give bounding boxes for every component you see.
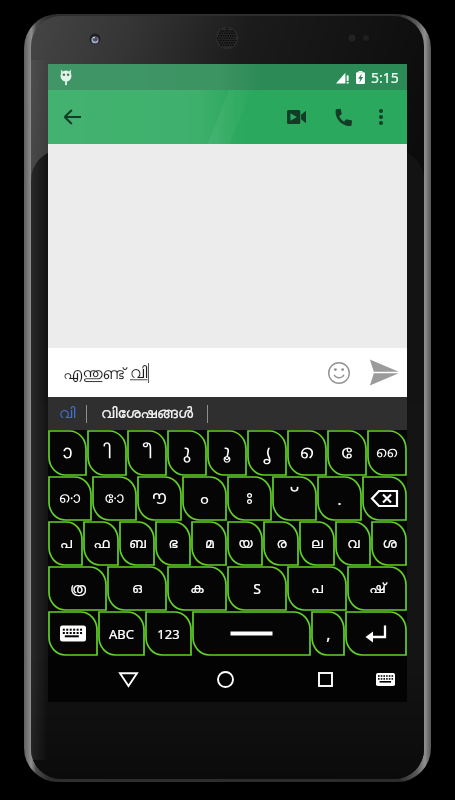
staticText: ഫ bbox=[93, 537, 110, 551]
staticText: ഷ് bbox=[369, 582, 386, 596]
button[interactable]: Backspace bbox=[362, 476, 407, 521]
staticText: വി bbox=[130, 365, 148, 381]
button[interactable]: Send bbox=[361, 348, 407, 397]
button[interactable]: Video call bbox=[276, 90, 316, 144]
button[interactable]: Enter bbox=[345, 611, 407, 656]
button[interactable]: ക bbox=[167, 566, 227, 611]
button[interactable]: യ bbox=[227, 521, 263, 566]
button[interactable]: ee bbox=[327, 430, 367, 476]
button[interactable]: oo bbox=[92, 476, 137, 521]
button[interactable]: aa bbox=[48, 430, 87, 476]
button[interactable]: ABC bbox=[98, 611, 145, 656]
staticText: 5:15 bbox=[371, 68, 399, 87]
staticText: യ bbox=[238, 537, 253, 551]
button[interactable]: 123 bbox=[145, 611, 192, 656]
button[interactable]: ah bbox=[227, 476, 272, 521]
staticText: ശ bbox=[382, 537, 397, 551]
button[interactable]: വ bbox=[335, 521, 371, 566]
staticText: , bbox=[326, 623, 331, 645]
staticText: . bbox=[337, 489, 342, 509]
staticText: ABC bbox=[109, 625, 134, 643]
button[interactable]: ഷ് bbox=[347, 566, 407, 611]
button[interactable]: i bbox=[87, 430, 127, 476]
button[interactable]: Call bbox=[323, 90, 363, 144]
staticText: എന്തുണ്ട് bbox=[63, 362, 130, 384]
staticText: S bbox=[253, 579, 261, 598]
staticText: ല bbox=[311, 537, 323, 551]
button[interactable]: u bbox=[167, 430, 207, 476]
button[interactable]: Back bbox=[48, 90, 96, 144]
button[interactable]: Home bbox=[199, 656, 251, 702]
button[interactable]: Space bbox=[192, 611, 311, 656]
button[interactable]: Recent apps bbox=[299, 656, 351, 702]
staticText: വിശേഷങ്ങൾ bbox=[101, 406, 194, 421]
staticText: ഒ bbox=[132, 582, 142, 596]
button[interactable]: Emoji bbox=[317, 348, 361, 397]
button[interactable]: rv bbox=[247, 430, 287, 476]
button[interactable]: ഒ bbox=[107, 566, 167, 611]
button[interactable]: am bbox=[182, 476, 227, 521]
button[interactable]: ഭ bbox=[155, 521, 191, 566]
button[interactable]: ii bbox=[127, 430, 167, 476]
staticText: മ bbox=[205, 537, 214, 551]
button[interactable]: Switch keyboard bbox=[359, 656, 411, 702]
button[interactable]: More options bbox=[364, 90, 398, 144]
button[interactable]: . bbox=[317, 476, 362, 521]
button[interactable]: പ bbox=[287, 566, 347, 611]
staticText: ക bbox=[190, 582, 204, 596]
button[interactable]: മ bbox=[191, 521, 227, 566]
button[interactable]: Back bbox=[102, 656, 154, 702]
button[interactable]: ഫ bbox=[83, 521, 119, 566]
staticText: പ bbox=[60, 537, 72, 551]
button[interactable]: ശ bbox=[371, 521, 407, 566]
button[interactable]: ത്ര bbox=[48, 566, 107, 611]
staticText: വി bbox=[59, 406, 76, 421]
button[interactable]: o bbox=[48, 476, 92, 521]
button[interactable]: വിശേഷങ്ങൾ bbox=[87, 397, 207, 430]
button[interactable]: au bbox=[137, 476, 182, 521]
button[interactable]: Switch keyboard bbox=[48, 611, 98, 656]
button[interactable]: S bbox=[227, 566, 287, 611]
staticText: 123 bbox=[157, 625, 180, 643]
button[interactable]: ല bbox=[299, 521, 335, 566]
staticText: ഭ bbox=[168, 537, 178, 551]
button[interactable]: ai bbox=[367, 430, 407, 476]
staticText: ത്ര bbox=[70, 582, 86, 596]
button[interactable]: virama bbox=[272, 476, 317, 521]
button[interactable]: പ bbox=[48, 521, 83, 566]
button[interactable]: uu bbox=[207, 430, 247, 476]
button[interactable]: e bbox=[287, 430, 327, 476]
button[interactable]: വി bbox=[48, 397, 86, 430]
staticText: വ bbox=[347, 537, 360, 551]
button[interactable]: ര bbox=[263, 521, 299, 566]
button[interactable]: , bbox=[311, 611, 345, 656]
staticText: ബ bbox=[129, 537, 146, 551]
button[interactable]: ബ bbox=[119, 521, 155, 566]
staticText: പ bbox=[311, 582, 323, 596]
staticText: ര bbox=[276, 537, 287, 551]
